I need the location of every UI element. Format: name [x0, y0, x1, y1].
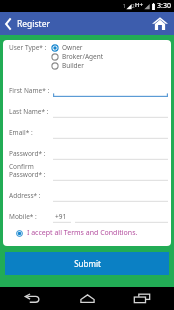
staticText: Last Name* :: [9, 107, 49, 116]
button[interactable]: I accept all Terms and Conditions.: [16, 227, 171, 239]
button[interactable]: +91: [53, 209, 71, 223]
button[interactable]: Submit: [5, 252, 169, 275]
staticText: Mobile* :: [9, 212, 37, 221]
staticText: First Name* :: [9, 86, 50, 95]
staticText: Confirm Password* :: [9, 162, 46, 179]
staticText: Builder: [62, 61, 84, 70]
staticText: Broker/Agent: [62, 52, 104, 61]
staticText: 1: [123, 3, 126, 9]
staticText: 2: [132, 3, 135, 9]
button[interactable]: Back: [9, 287, 55, 310]
button[interactable]: Recent apps: [119, 287, 165, 310]
button[interactable]: Home: [149, 12, 171, 35]
button[interactable]: [53, 146, 168, 160]
staticText: 3:30: [157, 1, 171, 11]
button[interactable]: [75, 209, 168, 223]
button[interactable]: Builder: [51, 61, 84, 70]
button[interactable]: Back: [0, 12, 16, 35]
staticText: Register: [17, 18, 50, 30]
button[interactable]: [53, 104, 168, 118]
staticText: H+: [135, 1, 143, 9]
button[interactable]: Broker/Agent: [51, 52, 104, 61]
staticText: Email* :: [9, 128, 33, 137]
staticText: +91: [55, 212, 67, 221]
button[interactable]: [53, 167, 168, 181]
button[interactable]: Home: [64, 287, 110, 310]
staticText: User Type* :: [9, 43, 47, 52]
button[interactable]: Owner: [51, 43, 83, 52]
staticText: Submit: [74, 258, 101, 269]
staticText: Password* :: [9, 149, 46, 158]
staticText: Address* :: [9, 191, 41, 200]
staticText: I accept all Terms and Conditions.: [27, 228, 138, 238]
button[interactable]: [53, 188, 168, 202]
button[interactable]: [53, 83, 168, 97]
button[interactable]: [53, 125, 168, 139]
staticText: Owner: [62, 43, 83, 52]
